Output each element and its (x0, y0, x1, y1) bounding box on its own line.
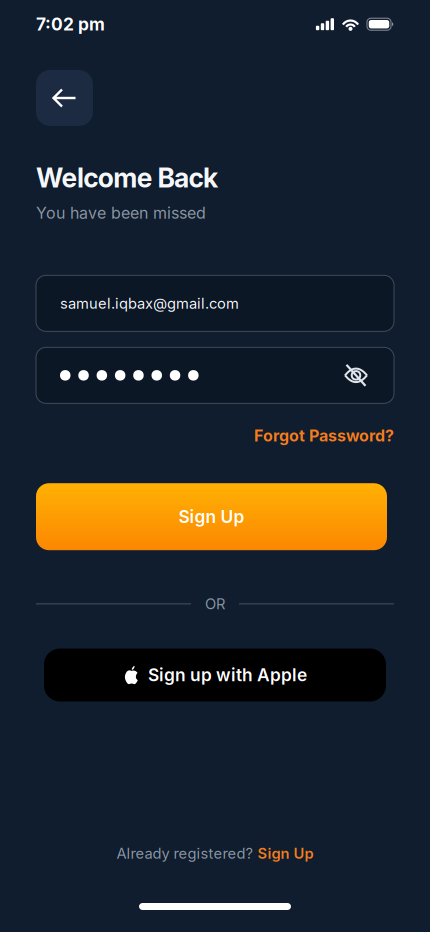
staticText: 7:02 pm (36, 14, 105, 34)
staticText: Sign Up (257, 845, 313, 862)
staticText: You have been missed (36, 203, 206, 222)
button[interactable]: Back (36, 70, 93, 126)
staticText: OR (205, 595, 225, 612)
button[interactable]: Forgot Password? (254, 426, 394, 445)
staticText: Sign Up (178, 506, 244, 527)
staticText: Already registered? (116, 845, 252, 862)
staticText: Forgot Password? (254, 426, 394, 445)
button[interactable]: Show password (344, 366, 368, 384)
button[interactable]: Sign up with Apple (44, 648, 386, 701)
staticText: Welcome Back (36, 162, 218, 193)
staticText: samuel.iqbax@gmail.com (60, 295, 239, 312)
button[interactable]: Sign Up (257, 845, 313, 862)
staticText: Sign up with Apple (148, 665, 307, 685)
button[interactable]: Sign Up (36, 483, 387, 550)
